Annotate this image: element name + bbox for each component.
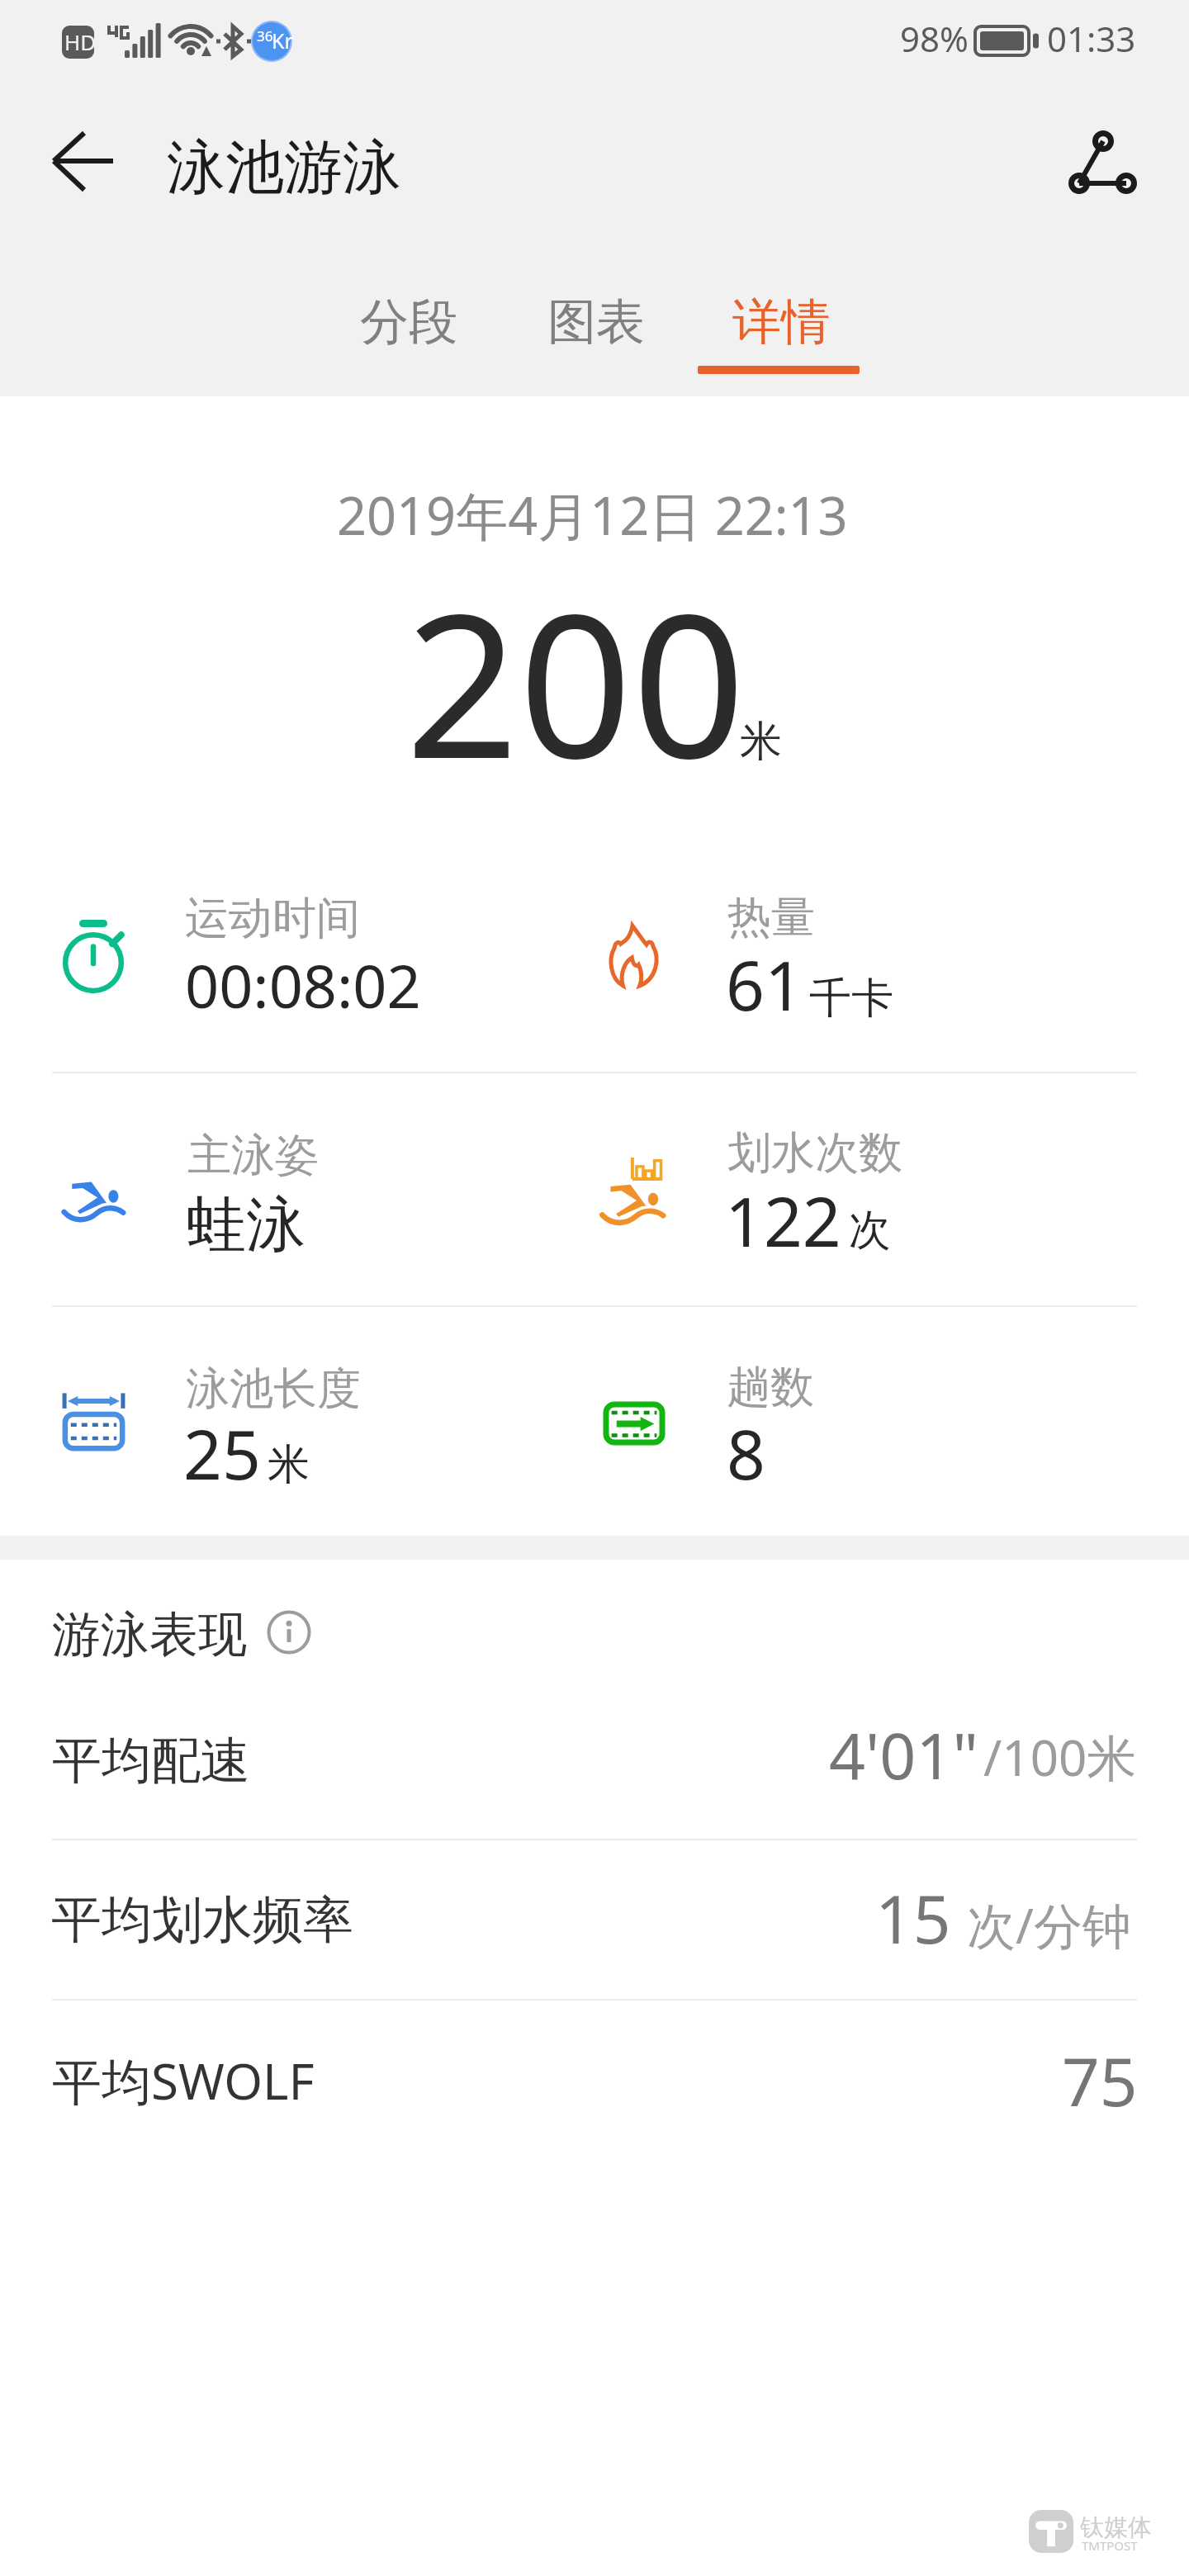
staticText: 泳池游泳: [167, 131, 401, 205]
staticText: 泳池长度: [186, 1361, 361, 1417]
button[interactable]: 分段: [326, 268, 491, 383]
staticText: 米: [740, 715, 782, 768]
staticText: 平均SWOLF: [52, 2047, 315, 2114]
staticText: 36: [257, 26, 273, 45]
button[interactable]: Info: [267, 1610, 311, 1655]
button[interactable]: [0, 2000, 1189, 2159]
staticText: 122: [725, 1174, 841, 1267]
staticText: 图表: [547, 291, 645, 353]
button[interactable]: Back: [37, 124, 128, 215]
staticText: 25: [183, 1407, 261, 1499]
staticText: 米: [268, 1438, 310, 1491]
staticText: TMTPOST: [1082, 2537, 1138, 2554]
staticText: 平均划水频率: [51, 1888, 353, 1952]
staticText: 98%: [900, 15, 969, 62]
staticText: 75: [1062, 2035, 1138, 2125]
staticText: 蛙泳: [187, 1188, 306, 1263]
staticText: 详情: [732, 291, 830, 353]
staticText: 划水次数: [727, 1125, 902, 1181]
staticText: 01:33: [1047, 15, 1136, 62]
staticText: 热量: [727, 890, 815, 945]
button[interactable]: 详情: [699, 268, 864, 383]
staticText: 次: [849, 1204, 891, 1257]
button[interactable]: 图表: [514, 268, 679, 383]
staticText: 钛媒体: [1080, 2512, 1152, 2543]
staticText: 2019年4月12日 22:13: [337, 480, 848, 551]
staticText: 平均配速: [52, 1730, 250, 1792]
staticText: 次/分钟: [967, 1892, 1131, 1958]
button[interactable]: Share: [1063, 125, 1143, 205]
staticText: 运动时间: [185, 891, 360, 946]
staticText: 8: [727, 1407, 765, 1499]
staticText: 15: [875, 1873, 951, 1963]
staticText: 00:08:02: [185, 945, 421, 1025]
button[interactable]: [0, 1840, 1189, 1999]
staticText: 61: [726, 938, 803, 1030]
staticText: HD: [64, 27, 97, 56]
staticText: 200: [405, 546, 746, 816]
staticText: 游泳表现: [52, 1604, 247, 1665]
staticText: 趟数: [727, 1360, 814, 1415]
button[interactable]: [0, 1680, 1189, 1840]
staticText: Kr: [272, 26, 293, 54]
staticText: 主泳姿: [187, 1128, 319, 1183]
staticText: /100米: [983, 1723, 1137, 1791]
staticText: 千卡: [809, 972, 893, 1025]
staticText: 分段: [360, 291, 457, 353]
staticText: 4'01": [829, 1712, 978, 1798]
